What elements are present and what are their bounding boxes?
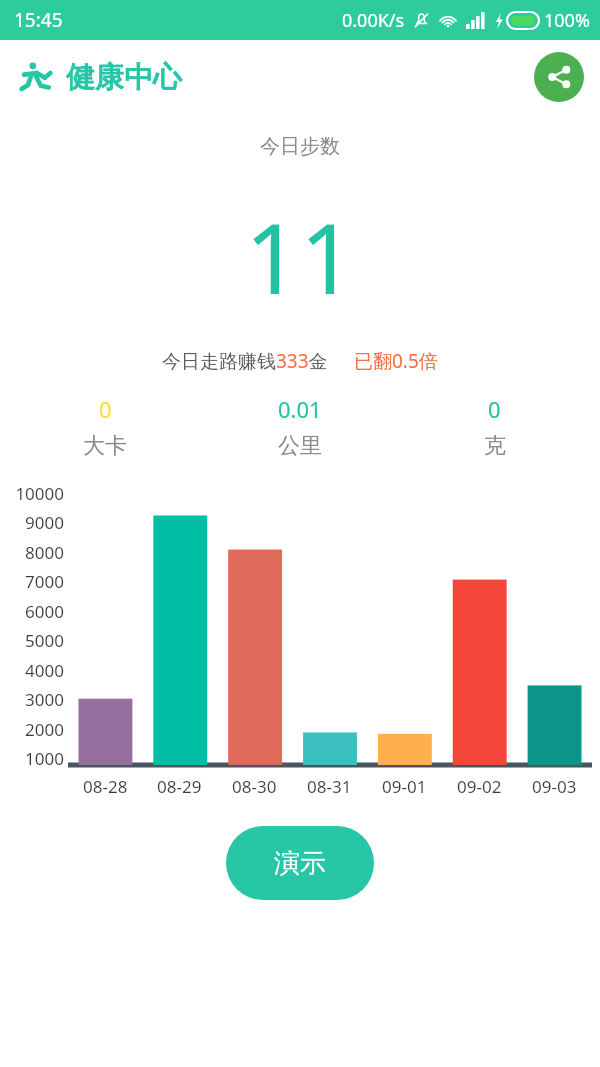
- staticText: 08-28: [83, 775, 128, 798]
- staticText: 5000: [25, 629, 64, 652]
- staticText: 健康中心: [66, 59, 182, 96]
- staticText: 克: [484, 432, 506, 460]
- staticText: 0.00K/s: [342, 8, 405, 33]
- staticText: 10000: [15, 482, 64, 505]
- button[interactable]: Share: [534, 52, 584, 102]
- staticText: 大卡: [83, 432, 127, 460]
- staticText: 15:45: [14, 7, 63, 33]
- staticText: 8000: [25, 541, 64, 564]
- staticText: 0: [488, 394, 501, 424]
- staticText: 0: [99, 394, 112, 424]
- staticText: 08-31: [307, 775, 352, 798]
- staticText: 3000: [25, 688, 64, 711]
- staticText: 7000: [25, 570, 64, 593]
- staticText: 9000: [25, 511, 64, 534]
- staticText: 4000: [25, 659, 64, 682]
- staticText: 11: [245, 191, 355, 322]
- staticText: 0.01: [278, 394, 322, 424]
- staticText: 09-01: [382, 775, 427, 798]
- staticText: 09-03: [532, 775, 577, 798]
- staticText: 08-30: [232, 775, 277, 798]
- staticText: 已翻0.5倍: [354, 348, 438, 374]
- staticText: 08-29: [157, 775, 202, 798]
- staticText: 公里: [278, 432, 322, 460]
- staticText: 100%: [544, 8, 590, 33]
- staticText: 09-02: [457, 775, 502, 798]
- staticText: 今日走路赚钱333金: [162, 348, 328, 374]
- staticText: 6000: [25, 600, 64, 623]
- staticText: 演示: [274, 847, 326, 880]
- staticText: 1000: [25, 747, 64, 770]
- button[interactable]: 演示: [226, 826, 374, 900]
- staticText: 2000: [25, 718, 64, 741]
- staticText: 今日步数: [260, 134, 340, 159]
